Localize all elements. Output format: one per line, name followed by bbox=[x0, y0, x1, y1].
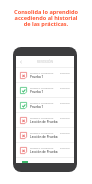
staticText: Prueba y corrección bbox=[30, 86, 60, 89]
staticText: Prueba y corrección bbox=[30, 116, 60, 119]
staticText: 5:30 pm bbox=[60, 86, 70, 89]
button[interactable]: Prueba y corrección bbox=[16, 143, 74, 158]
staticText: 5:30 pm bbox=[60, 101, 70, 104]
staticText: 5:30 pm bbox=[60, 71, 70, 74]
staticText: Prueba 1 bbox=[30, 90, 44, 94]
button[interactable]: Back bbox=[16, 57, 25, 66]
staticText: Prueba y corrección bbox=[30, 146, 60, 149]
button[interactable]: Prueba y corrección bbox=[16, 113, 74, 128]
staticText: Prueba y corrección bbox=[30, 71, 60, 74]
staticText: 5:30 pm bbox=[60, 146, 70, 149]
staticText: Lección de Prueba bbox=[30, 120, 58, 124]
button[interactable]: Prueba y corrección bbox=[16, 83, 74, 98]
button[interactable]: Prueba y corrección bbox=[16, 68, 74, 83]
button[interactable]: Prueba y corrección bbox=[16, 98, 74, 113]
staticText: 5:30 pm bbox=[60, 116, 70, 119]
button[interactable]: Prueba y corrección bbox=[16, 128, 74, 143]
staticText: Lección de Prueba bbox=[30, 150, 58, 154]
staticText: Prueba 1 bbox=[30, 75, 44, 79]
staticText: 5:30 pm bbox=[60, 131, 70, 134]
staticText: Lección de Prueba bbox=[30, 135, 58, 139]
staticText: Prueba y corrección bbox=[30, 131, 60, 134]
staticText: REVISIÓN bbox=[25, 59, 65, 64]
staticText: Prueba y corrección bbox=[30, 101, 60, 104]
staticText: Consolida lo aprendido accediendo al his… bbox=[13, 8, 79, 28]
staticText: Prueba 1 bbox=[30, 105, 44, 109]
